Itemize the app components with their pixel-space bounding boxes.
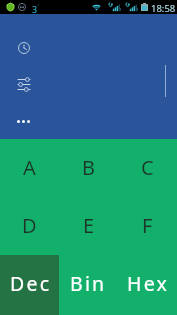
staticText: 3 (32, 3, 38, 15)
staticText: D (22, 212, 37, 239)
button[interactable]: More options (11, 109, 35, 133)
button[interactable]: Settings (12, 72, 36, 96)
staticText: ° (37, 2, 40, 10)
staticText: Hex (127, 270, 169, 297)
button[interactable]: History (12, 36, 36, 60)
button[interactable]: Hex (118, 255, 177, 315)
button[interactable]: A (0, 139, 59, 197)
button[interactable]: E (59, 197, 118, 255)
button[interactable]: Dec (0, 255, 59, 315)
button[interactable]: Bin (59, 255, 118, 315)
staticText: C (141, 154, 154, 181)
button[interactable]: F (118, 197, 177, 255)
staticText: A (23, 154, 36, 181)
staticText: E (83, 212, 95, 239)
staticText: Dec (10, 270, 52, 297)
button[interactable]: B (59, 139, 118, 197)
staticText: F (142, 212, 153, 239)
staticText: B (82, 154, 95, 181)
staticText: 18:58 (151, 2, 176, 15)
staticText: Bin (70, 270, 107, 297)
button[interactable]: C (118, 139, 177, 197)
button[interactable]: D (0, 197, 59, 255)
